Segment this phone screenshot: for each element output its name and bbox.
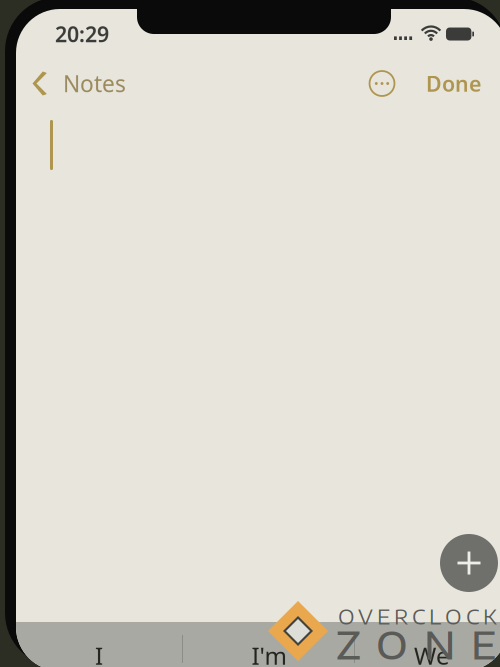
staticText: We bbox=[414, 640, 450, 667]
staticText: Done bbox=[426, 69, 481, 98]
button[interactable]: Notes bbox=[32, 61, 126, 105]
button[interactable]: We bbox=[355, 631, 500, 667]
button[interactable]: More options bbox=[367, 68, 397, 98]
staticText: I'm bbox=[251, 640, 286, 667]
staticText: I bbox=[95, 640, 103, 667]
staticText: OVERCLOCK bbox=[338, 604, 497, 629]
staticText: 20:29 bbox=[55, 20, 109, 48]
button[interactable]: New item bbox=[437, 531, 500, 595]
button[interactable]: Done bbox=[426, 62, 481, 105]
staticText: Notes bbox=[63, 68, 126, 98]
staticText: ZONE bbox=[336, 621, 497, 667]
button[interactable]: I'm bbox=[183, 631, 355, 667]
button[interactable]: I bbox=[16, 631, 182, 667]
